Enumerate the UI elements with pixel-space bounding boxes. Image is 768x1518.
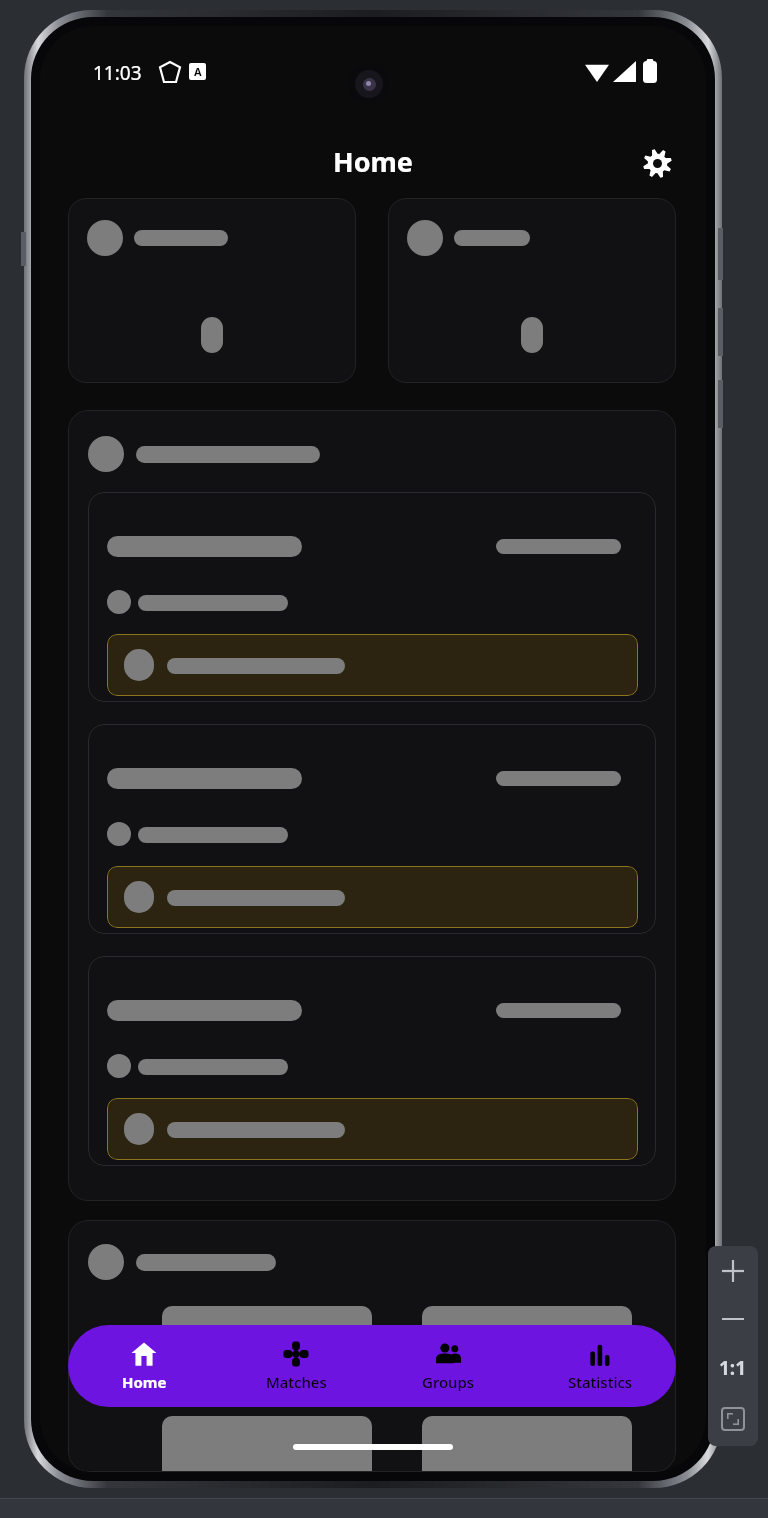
button[interactable] xyxy=(388,198,676,383)
button[interactable]: Matches xyxy=(220,1325,372,1407)
staticText: A xyxy=(194,64,202,79)
staticText: 11:03 xyxy=(93,60,142,86)
button[interactable]: Settings xyxy=(633,139,681,187)
staticText: Statistics xyxy=(568,1372,633,1392)
button[interactable]: Zoom out xyxy=(708,1296,758,1342)
button[interactable]: Groups xyxy=(372,1325,524,1407)
button[interactable] xyxy=(107,634,638,696)
button[interactable]: Statistics xyxy=(524,1325,676,1407)
button[interactable] xyxy=(107,1098,638,1160)
button[interactable] xyxy=(88,956,656,1166)
button[interactable] xyxy=(68,410,676,1201)
staticText: Matches xyxy=(266,1372,327,1392)
button[interactable]: Zoom in xyxy=(708,1246,758,1296)
button[interactable] xyxy=(88,492,656,702)
staticText: Home xyxy=(40,143,706,180)
button[interactable] xyxy=(88,724,656,934)
button[interactable]: Home xyxy=(68,1325,220,1407)
staticText: Groups xyxy=(422,1372,475,1392)
button[interactable]: Actual size xyxy=(708,1342,758,1394)
button[interactable]: Fit to screen xyxy=(708,1394,758,1444)
staticText: 1:1 xyxy=(719,1355,747,1381)
staticText: Home xyxy=(122,1372,167,1392)
button[interactable] xyxy=(107,866,638,928)
button[interactable] xyxy=(68,1220,676,1472)
button[interactable] xyxy=(68,198,356,383)
